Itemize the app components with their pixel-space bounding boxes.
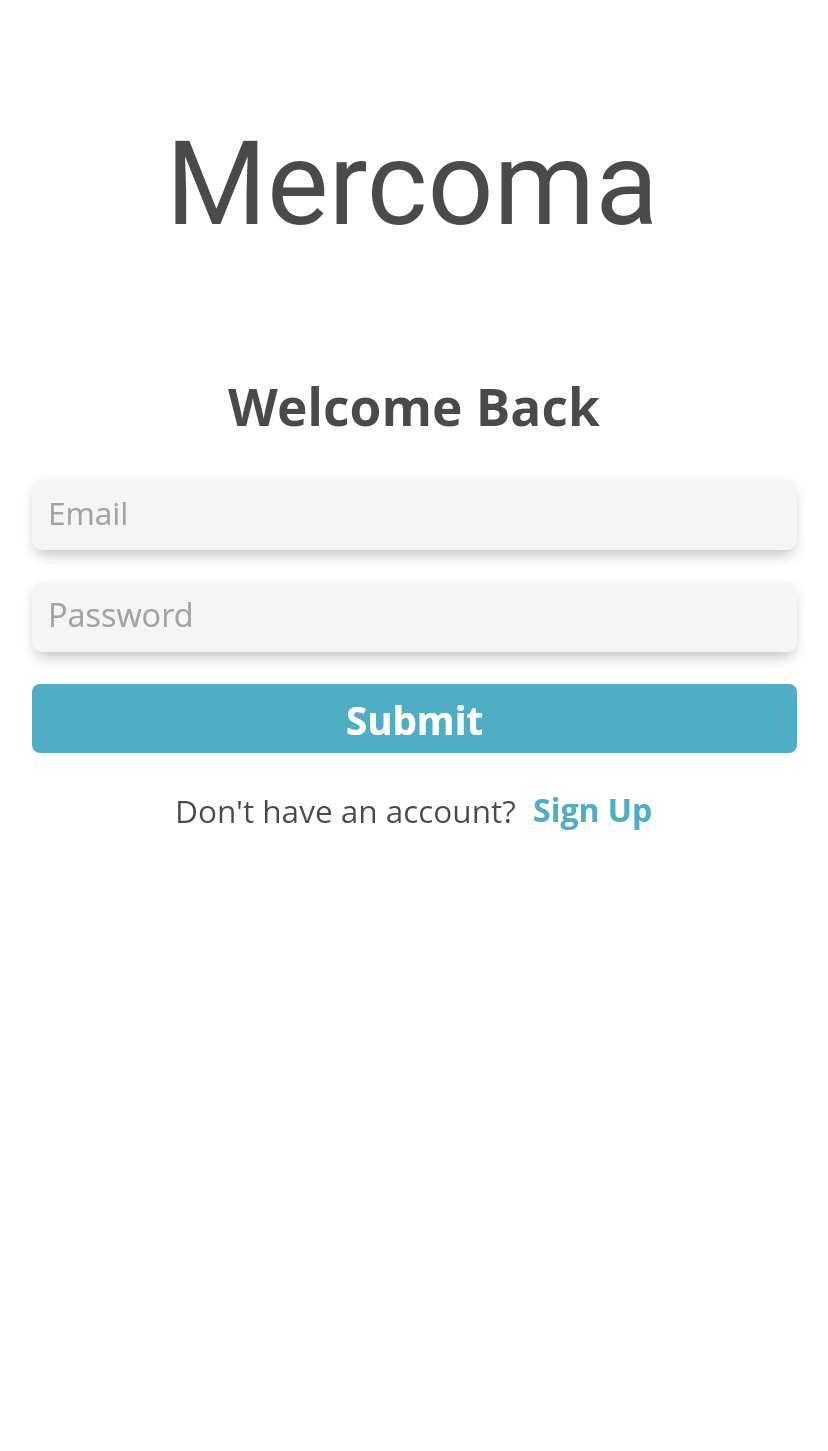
staticText: Mercoma	[0, 116, 826, 252]
staticText: Email	[48, 491, 129, 534]
staticText: Don't have an account?	[175, 789, 516, 832]
button[interactable]: Submit	[32, 684, 797, 753]
staticText: Password	[48, 592, 194, 636]
button[interactable]: Sign Up	[533, 788, 653, 832]
staticText: Welcome Back	[0, 371, 828, 441]
staticText: Submit	[346, 694, 484, 746]
button[interactable]: Email	[32, 480, 797, 550]
button[interactable]: Password	[32, 582, 797, 652]
